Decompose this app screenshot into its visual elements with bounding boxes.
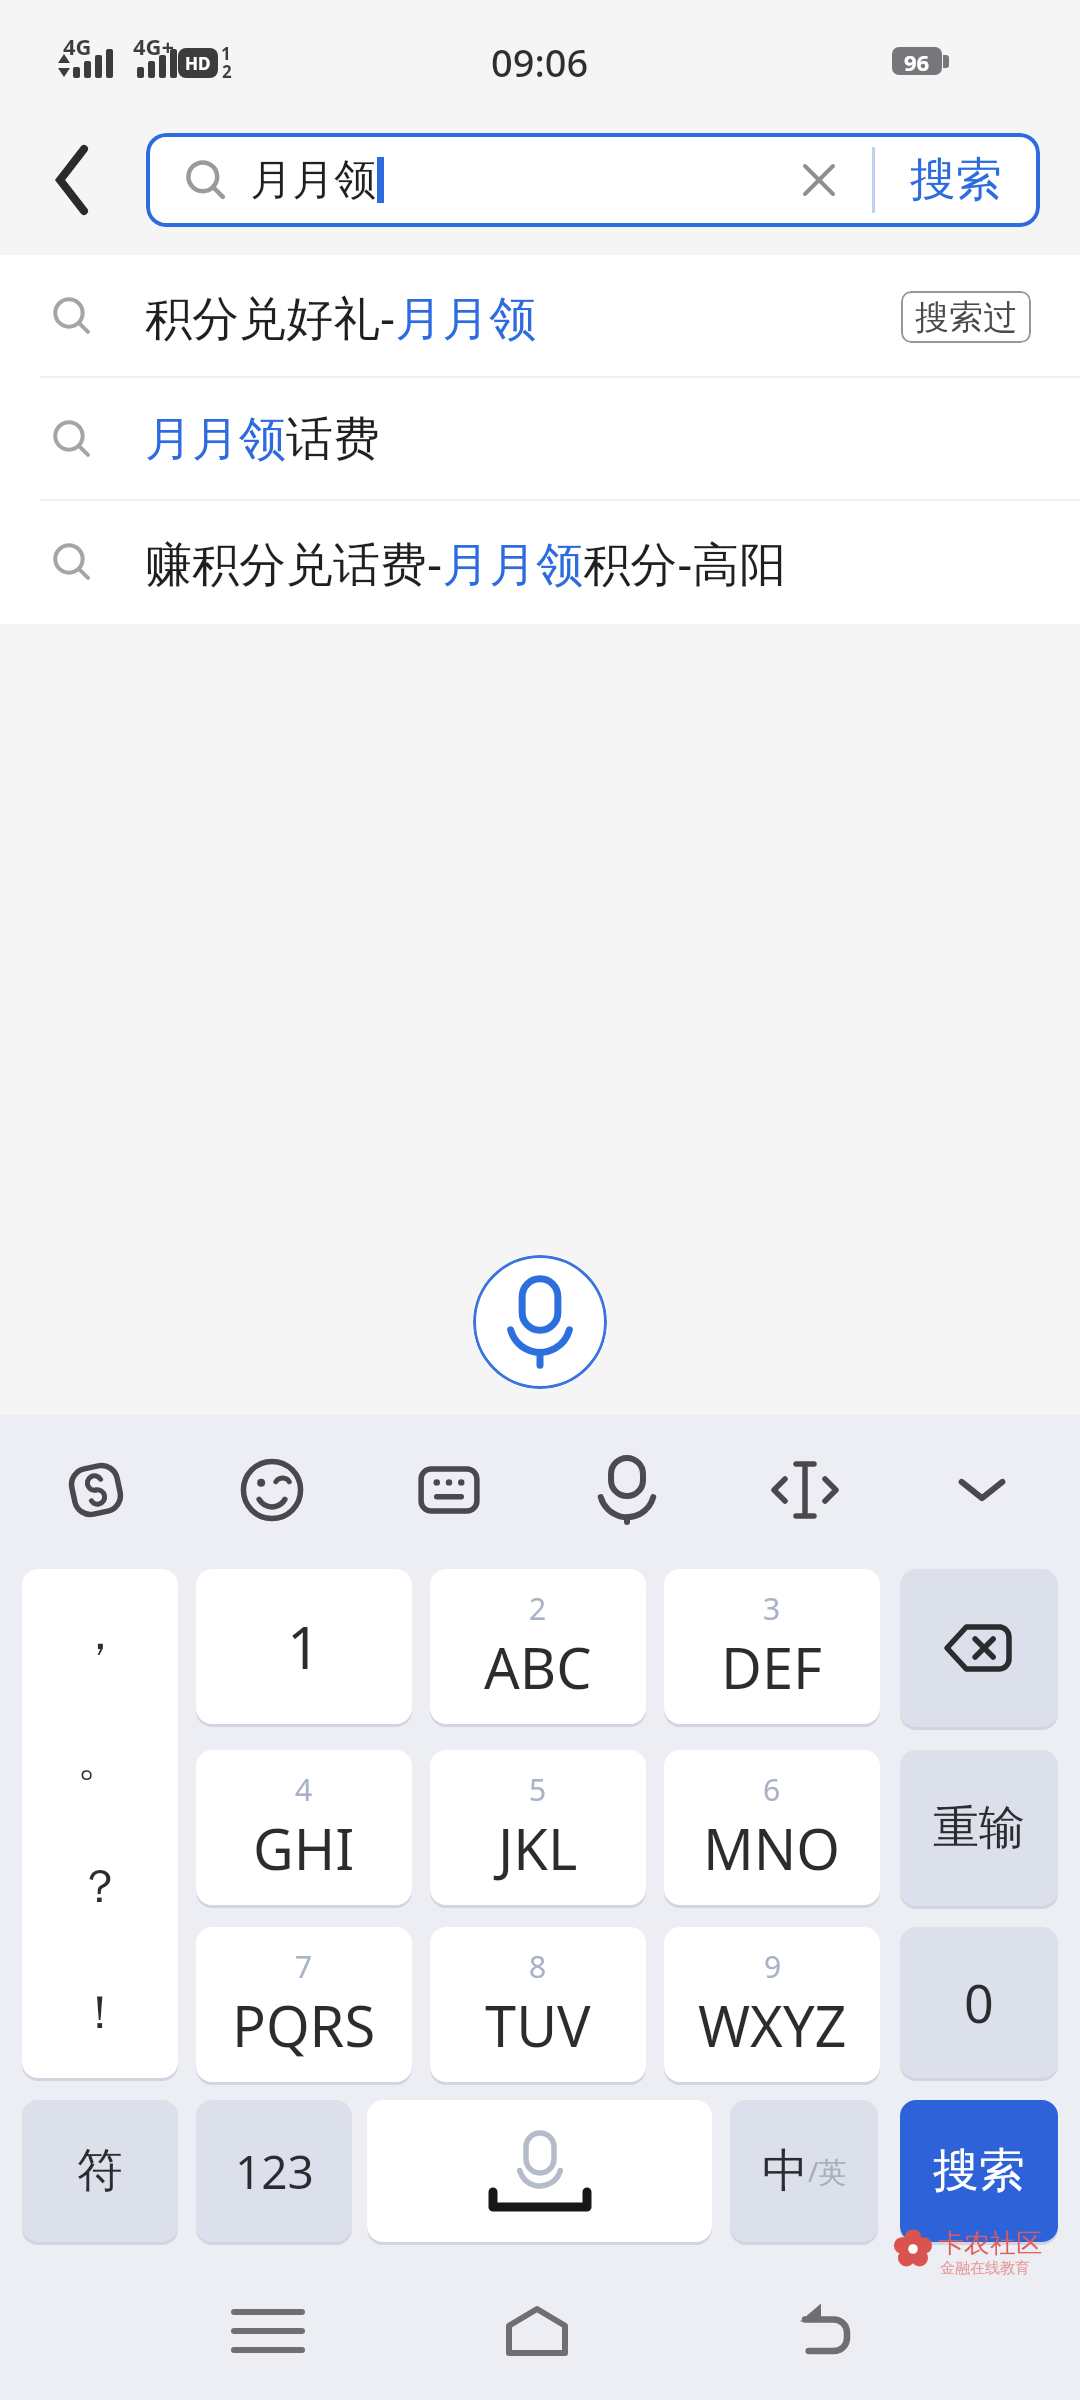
- button[interactable]: ，: [22, 1569, 178, 2078]
- staticText: 3: [763, 1588, 781, 1629]
- staticText: 金融在线教育: [940, 2259, 1030, 2278]
- button[interactable]: 月月领话费: [0, 378, 1080, 501]
- staticText: HD: [185, 52, 211, 75]
- staticText: ！: [77, 1984, 123, 2042]
- button[interactable]: [62, 1456, 130, 1524]
- button[interactable]: [799, 2308, 853, 2356]
- staticText: 6: [763, 1769, 781, 1810]
- staticText: 赚积分兑话费-月月领积分-高阳: [145, 531, 787, 595]
- staticText: 中: [762, 2142, 808, 2200]
- button[interactable]: [415, 1456, 483, 1524]
- button[interactable]: [473, 1255, 607, 1389]
- button[interactable]: 符: [22, 2100, 178, 2242]
- button[interactable]: [802, 163, 836, 197]
- button[interactable]: [948, 1456, 1016, 1524]
- staticText: 96: [904, 47, 930, 75]
- button[interactable]: [367, 2100, 712, 2242]
- staticText: 2: [222, 60, 232, 83]
- staticText: 0: [964, 1967, 994, 2038]
- staticText: 重输: [933, 1799, 1025, 1857]
- staticText: 5: [529, 1769, 547, 1810]
- button[interactable]: 0: [900, 1927, 1058, 2078]
- staticText: 积分兑好礼-月月领: [145, 285, 537, 349]
- staticText: 7: [295, 1946, 313, 1987]
- button[interactable]: 5: [430, 1750, 646, 1905]
- button[interactable]: 2: [430, 1569, 646, 1724]
- button[interactable]: 6: [664, 1750, 880, 1905]
- staticText: DEF: [721, 1629, 823, 1705]
- staticText: 卡农社区: [938, 2227, 1042, 2260]
- button[interactable]: [900, 1569, 1058, 1727]
- staticText: 1: [221, 42, 231, 65]
- button[interactable]: 赚积分兑话费-月月领积分-高阳: [0, 501, 1080, 624]
- button[interactable]: [48, 145, 98, 215]
- button[interactable]: 8: [430, 1927, 646, 2082]
- button[interactable]: [505, 2305, 569, 2357]
- button[interactable]: [238, 1456, 306, 1524]
- button[interactable]: 1: [196, 1569, 412, 1724]
- staticText: 4: [295, 1769, 313, 1810]
- staticText: WXYZ: [698, 1987, 847, 2063]
- button[interactable]: 4: [196, 1750, 412, 1905]
- staticText: 搜索过: [915, 296, 1017, 339]
- button[interactable]: 搜索: [872, 133, 1040, 227]
- staticText: 月月领话费: [145, 410, 380, 469]
- staticText: PQRS: [232, 1987, 376, 2063]
- staticText: 搜索: [933, 2142, 1025, 2200]
- staticText: JKL: [498, 1810, 578, 1886]
- button[interactable]: 中: [730, 2100, 878, 2242]
- staticText: 1: [287, 1607, 321, 1686]
- button[interactable]: 重输: [900, 1750, 1058, 1906]
- button[interactable]: 9: [664, 1927, 880, 2082]
- staticText: 8: [529, 1946, 547, 1987]
- staticText: 4G: [63, 31, 92, 61]
- staticText: 09:06: [491, 36, 589, 80]
- button[interactable]: [771, 1456, 839, 1524]
- staticText: ？: [77, 1858, 123, 1916]
- button[interactable]: 3: [664, 1569, 880, 1724]
- staticText: /英: [808, 2152, 847, 2190]
- staticText: 4G+: [133, 31, 175, 61]
- staticText: 9: [764, 1946, 782, 1987]
- staticText: MNO: [703, 1810, 841, 1886]
- button[interactable]: 7: [196, 1927, 412, 2082]
- staticText: 。: [77, 1731, 123, 1789]
- button[interactable]: 搜索过: [901, 291, 1031, 343]
- staticText: ABC: [484, 1629, 592, 1705]
- staticText: 搜索: [910, 151, 1002, 209]
- staticText: 月月领: [250, 154, 376, 207]
- button[interactable]: 搜索: [900, 2100, 1058, 2242]
- staticText: TUV: [485, 1987, 591, 2063]
- button[interactable]: 积分兑好礼-月月领: [0, 255, 1080, 378]
- staticText: 123: [235, 2140, 314, 2203]
- button[interactable]: [593, 1456, 661, 1524]
- staticText: 符: [77, 2142, 123, 2200]
- button[interactable]: [234, 2308, 302, 2358]
- staticText: GHI: [253, 1810, 355, 1886]
- button[interactable]: 123: [196, 2100, 352, 2242]
- staticText: 2: [529, 1588, 547, 1629]
- staticText: ，: [77, 1605, 123, 1663]
